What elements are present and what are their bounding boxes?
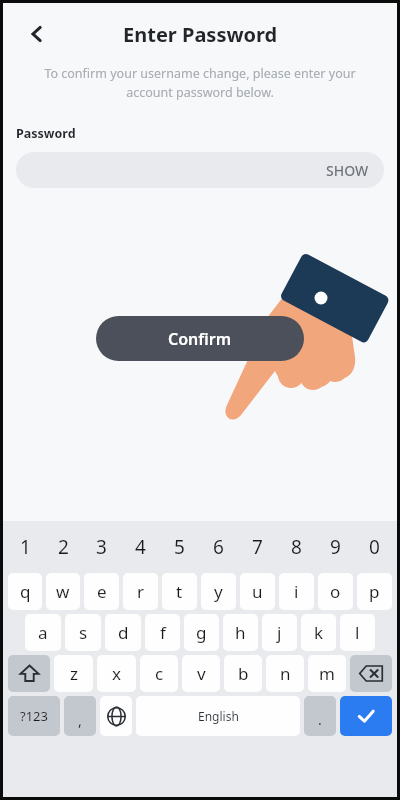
button[interactable]: 0	[355, 527, 394, 567]
staticText: u	[252, 580, 263, 603]
button[interactable]: 4	[121, 527, 160, 567]
button[interactable]: n	[266, 655, 304, 692]
staticText: v	[197, 662, 206, 685]
button[interactable]: k	[301, 614, 336, 651]
button[interactable]: x	[97, 655, 136, 692]
staticText: Password	[16, 125, 76, 142]
staticText: 4	[135, 534, 146, 560]
button[interactable]: 8	[277, 527, 316, 567]
button[interactable]: g	[184, 614, 219, 651]
button[interactable]: o	[318, 573, 353, 610]
button[interactable]: h	[223, 614, 258, 651]
button[interactable]: q	[8, 573, 42, 610]
staticText: e	[97, 580, 107, 603]
button[interactable]: j	[262, 614, 297, 651]
button[interactable]: Confirm	[96, 316, 304, 361]
staticText: j	[277, 621, 282, 644]
button[interactable]: b	[224, 655, 262, 692]
staticText: n	[280, 662, 291, 685]
button[interactable]: 3	[82, 527, 121, 567]
button[interactable]: Enter	[340, 696, 392, 736]
staticText: 3	[96, 534, 107, 560]
staticText: To confirm your username change, please …	[41, 65, 359, 101]
button[interactable]: c	[140, 655, 178, 692]
button[interactable]: z	[54, 655, 93, 692]
button[interactable]: p	[357, 573, 392, 610]
button[interactable]: 1	[6, 527, 44, 567]
staticText: f	[160, 621, 166, 644]
button[interactable]: Back	[15, 12, 59, 56]
button[interactable]: s	[65, 614, 101, 651]
staticText: 8	[291, 534, 302, 560]
button[interactable]: Shift	[8, 655, 50, 692]
staticText: a	[38, 621, 48, 644]
staticText: k	[314, 621, 324, 644]
staticText: r	[137, 580, 145, 603]
staticText: o	[330, 580, 341, 603]
staticText: i	[294, 580, 299, 603]
button[interactable]: ,	[64, 696, 96, 736]
button[interactable]: ?123	[8, 696, 60, 736]
button[interactable]: f	[145, 614, 180, 651]
button[interactable]: u	[240, 573, 275, 610]
button[interactable]: 5	[160, 527, 199, 567]
staticText: l	[355, 621, 360, 644]
staticText: 5	[174, 534, 185, 560]
staticText: c	[155, 662, 164, 685]
button[interactable]: SHOW	[16, 152, 384, 188]
button[interactable]: Change language	[100, 696, 132, 736]
staticText: p	[369, 580, 380, 603]
staticText: g	[196, 621, 207, 644]
staticText: .	[318, 710, 322, 729]
staticText: q	[20, 580, 31, 603]
button[interactable]: a	[25, 614, 61, 651]
button[interactable]: l	[340, 614, 375, 651]
button[interactable]: English	[136, 696, 300, 736]
button[interactable]: r	[123, 573, 158, 610]
button[interactable]: m	[308, 655, 346, 692]
staticText: 7	[252, 534, 263, 560]
staticText: ?123	[20, 707, 48, 725]
staticText: ,	[78, 711, 82, 730]
button[interactable]: w	[46, 573, 80, 610]
staticText: z	[70, 662, 78, 685]
staticText: 9	[330, 534, 341, 560]
button[interactable]: .	[304, 696, 336, 736]
button[interactable]: 2	[44, 527, 82, 567]
button[interactable]: y	[201, 573, 236, 610]
button[interactable]: 6	[199, 527, 238, 567]
button[interactable]: Backspace	[350, 655, 392, 692]
staticText: w	[56, 580, 70, 603]
staticText: Enter Password	[123, 21, 278, 48]
staticText: y	[214, 580, 223, 603]
button[interactable]: 9	[316, 527, 355, 567]
staticText: t	[176, 580, 183, 603]
button[interactable]: 7	[238, 527, 277, 567]
staticText: d	[118, 621, 129, 644]
staticText: m	[319, 662, 335, 685]
staticText: Confirm	[168, 328, 232, 350]
staticText: English	[198, 708, 239, 724]
staticText: b	[238, 662, 249, 685]
staticText: 6	[213, 534, 224, 560]
staticText: h	[235, 621, 246, 644]
staticText: 2	[58, 534, 69, 560]
button[interactable]: i	[279, 573, 314, 610]
staticText: s	[79, 621, 88, 644]
staticText: 1	[20, 534, 31, 560]
button[interactable]: d	[105, 614, 141, 651]
button[interactable]: v	[182, 655, 220, 692]
staticText: SHOW	[326, 161, 369, 180]
button[interactable]: e	[84, 573, 119, 610]
staticText: 0	[369, 534, 380, 560]
button[interactable]: t	[162, 573, 197, 610]
staticText: x	[112, 662, 121, 685]
